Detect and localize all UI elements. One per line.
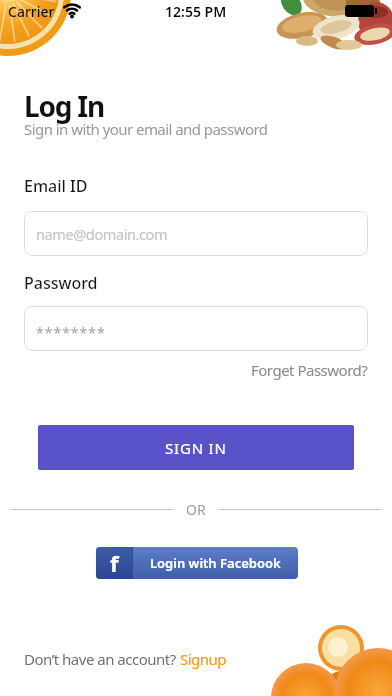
button[interactable]: SIGN IN — [38, 425, 354, 470]
staticText: Sign in with your email and password — [24, 119, 268, 139]
staticText: f — [110, 548, 119, 578]
staticText: Email ID — [24, 175, 88, 197]
staticText: Log In — [24, 87, 105, 125]
button[interactable]: ******** — [24, 306, 368, 351]
staticText: OR — [186, 500, 206, 519]
button[interactable]: f — [96, 547, 298, 579]
button[interactable]: Forget Password? — [251, 360, 368, 380]
button[interactable]: name@domain.com — [24, 211, 368, 256]
staticText: 12:55 PM — [165, 2, 227, 21]
staticText: name@domain.com — [36, 224, 168, 244]
staticText: Carrier — [8, 2, 55, 21]
staticText: SIGN IN — [165, 438, 227, 458]
staticText: Don’t have an account? — [24, 649, 180, 669]
staticText: Login with Facebook — [150, 554, 281, 572]
button[interactable]: Signup — [180, 649, 227, 669]
staticText: ******** — [36, 323, 106, 342]
staticText: Password — [24, 272, 98, 294]
